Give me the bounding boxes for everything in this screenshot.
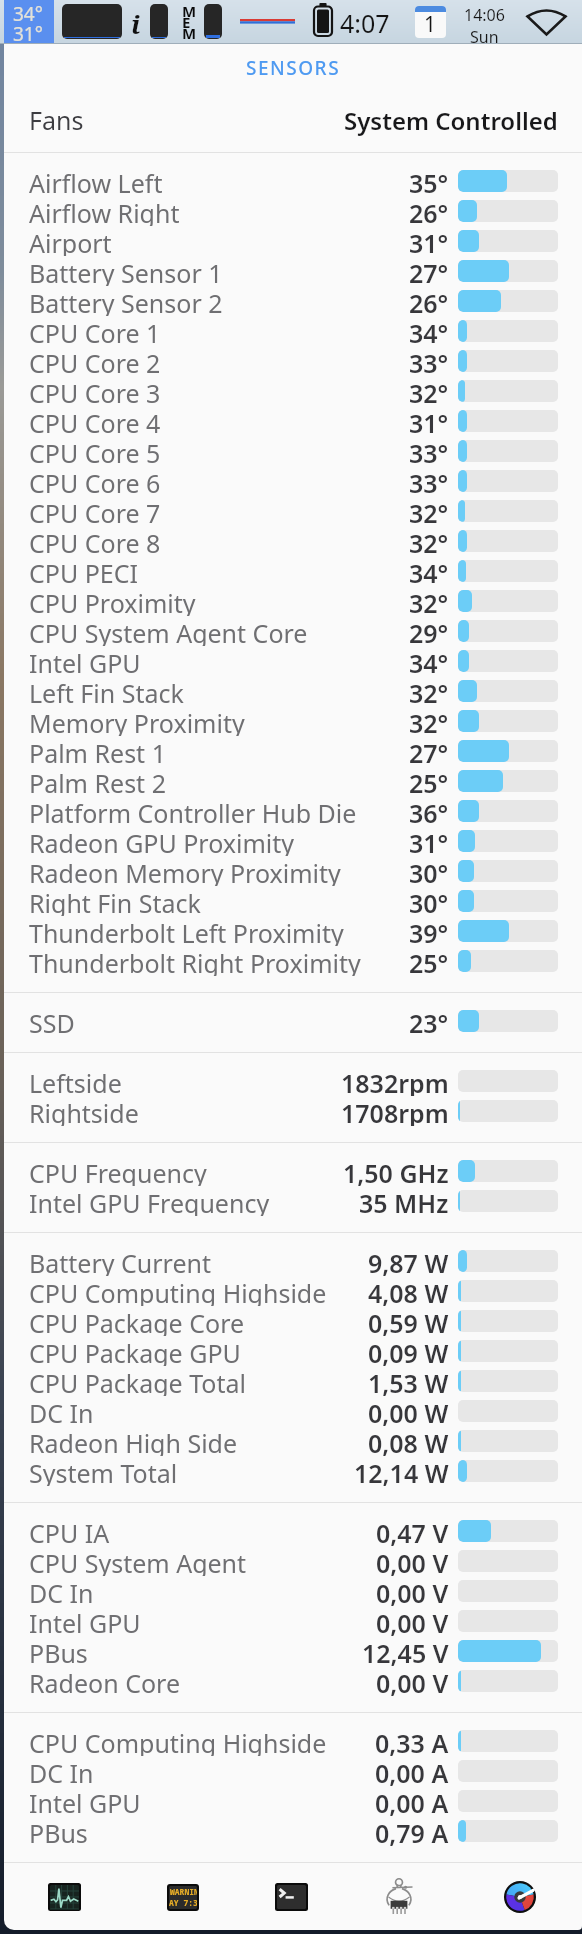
staticText: CPU Core 3 [29,376,161,406]
button[interactable]: Palm Rest 2 [4,766,582,796]
button[interactable]: Rightside [4,1096,582,1126]
staticText: SSD [29,1006,75,1036]
button[interactable]: CPU Core 4 [4,406,582,436]
button[interactable]: Airflow Right [4,196,582,226]
staticText: 1,50 GHz [343,1156,449,1186]
button[interactable]: Terminal [264,1870,318,1924]
button[interactable]: CPU Core 3 [4,376,582,406]
button[interactable]: CPU Core 7 [4,496,582,526]
button[interactable]: CPU Core 8 [4,526,582,556]
button[interactable]: PBus [4,1816,582,1846]
button[interactable]: Thunderbolt Right Proximity [4,946,582,976]
button[interactable]: Gauge [493,1870,547,1924]
button[interactable]: Memory Proximity [4,706,582,736]
staticText: 0,33 A [375,1726,449,1756]
staticText: 29° [409,616,449,646]
staticText: E [182,12,191,32]
staticText: Fans [29,103,84,137]
button[interactable]: Intel GPU [4,1786,582,1816]
button[interactable]: Console [156,1870,210,1924]
button[interactable]: Intel GPU [4,1606,582,1636]
button[interactable]: CPU Computing Highside [4,1726,582,1756]
button[interactable]: Palm Rest 1 [4,736,582,766]
button[interactable]: CPU Core 2 [4,346,582,376]
button[interactable]: CPU Core 6 [4,466,582,496]
staticText: 0,00 V [376,1606,449,1636]
button[interactable]: Radeon High Side [4,1426,582,1456]
button[interactable]: DC In [4,1756,582,1786]
button[interactable]: Left Fin Stack [4,676,582,706]
staticText: Radeon High Side [29,1426,238,1456]
button[interactable]: PBus [4,1636,582,1666]
staticText: 0,00 A [375,1786,449,1816]
staticText: SENSORS [246,55,341,81]
staticText: 27° [409,256,449,286]
button[interactable]: CPU PECI [4,556,582,586]
staticText: Leftside [29,1066,122,1096]
button[interactable]: CPU Package GPU [4,1336,582,1366]
button[interactable]: CPU Package Total [4,1366,582,1396]
staticText: i [131,6,141,38]
button[interactable]: Hardware Monitor [372,1870,426,1924]
button[interactable]: Monitor graph [150,4,168,39]
button[interactable]: Monitor graph [62,4,122,39]
button[interactable]: Intel GPU [4,646,582,676]
staticText: Battery Sensor 2 [29,286,223,316]
staticText: 31° [13,21,43,47]
staticText: 4,08 W [368,1276,449,1306]
button[interactable]: CPU Frequency [4,1156,582,1186]
staticText: Sun [470,26,499,48]
button[interactable]: CPU System Agent Core [4,616,582,646]
button[interactable]: Right Fin Stack [4,886,582,916]
button[interactable]: Calendar [415,6,446,38]
staticText: CPU PECI [29,556,139,586]
staticText: 34° [13,1,43,27]
button[interactable]: Activity Monitor [37,1870,91,1924]
staticText: PBus [29,1816,88,1846]
button[interactable]: System Total [4,1456,582,1486]
button[interactable]: Battery Current [4,1246,582,1276]
staticText: 1708rpm [341,1096,449,1126]
staticText: 32° [409,706,449,736]
other: Battery [313,3,333,37]
button[interactable]: Radeon Memory Proximity [4,856,582,886]
button[interactable]: Battery Sensor 2 [4,286,582,316]
button[interactable]: Intel GPU Frequency [4,1186,582,1216]
staticText: DC In [29,1576,94,1606]
staticText: 12,14 W [354,1456,449,1486]
staticText: 35° [409,166,449,196]
staticText: Thunderbolt Right Proximity [29,946,361,976]
staticText: Airflow Left [29,166,163,196]
button[interactable]: Airport [4,226,582,256]
staticText: Intel GPU [29,646,141,676]
button[interactable]: Airflow Left [4,166,582,196]
button[interactable]: CPU System Agent [4,1546,582,1576]
button[interactable]: Radeon Core [4,1666,582,1696]
button[interactable]: Thunderbolt Left Proximity [4,916,582,946]
staticText: CPU Computing Highside [29,1276,327,1306]
staticText: Intel GPU [29,1606,141,1636]
button[interactable]: DC In [4,1396,582,1426]
button[interactable]: CPU Package Core [4,1306,582,1336]
staticText: 23° [409,1006,449,1036]
button[interactable]: CPU Core 5 [4,436,582,466]
other: WiFi [526,8,567,36]
button[interactable]: Info [128,6,144,38]
button[interactable]: Leftside [4,1066,582,1096]
button[interactable]: SSD [4,1006,582,1036]
button[interactable]: Weather [4,0,54,44]
staticText: DC In [29,1756,94,1786]
button[interactable]: CPU Computing Highside [4,1276,582,1306]
button[interactable]: DC In [4,1576,582,1606]
button[interactable]: Monitor graph [204,4,222,39]
staticText: 9,87 W [368,1246,449,1276]
button[interactable]: Battery Sensor 1 [4,256,582,286]
staticText: Radeon Core [29,1666,180,1696]
button[interactable]: CPU Proximity [4,586,582,616]
button[interactable]: CPU Core 1 [4,316,582,346]
button[interactable]: CPU IA [4,1516,582,1546]
staticText: 35 MHz [359,1186,449,1216]
staticText: 0,08 W [368,1426,449,1456]
button[interactable]: Radeon GPU Proximity [4,826,582,856]
button[interactable]: Platform Controller Hub Die [4,796,582,826]
